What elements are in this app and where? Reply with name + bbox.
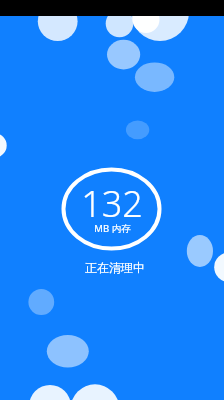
staticText: MB 内存 (94, 222, 131, 235)
staticText: 正在清理中 (85, 260, 145, 275)
button[interactable]: 132 MB 内存 清理 (64, 170, 160, 249)
staticText: 132 (81, 179, 143, 228)
